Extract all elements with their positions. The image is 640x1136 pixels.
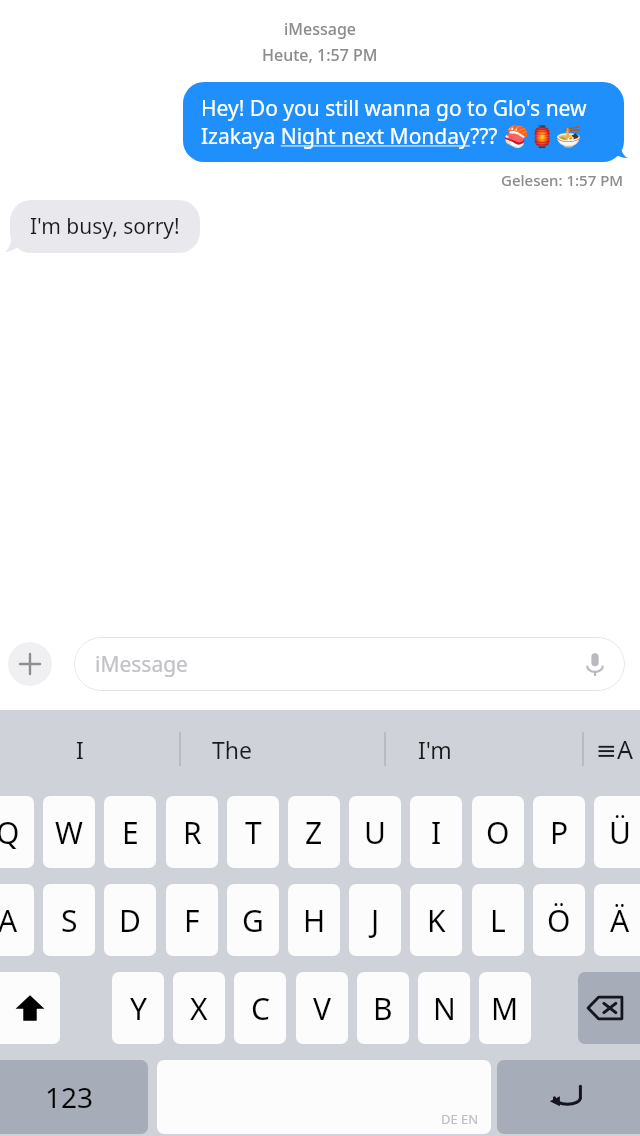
button[interactable]: The — [182, 710, 282, 788]
staticText: I'm — [418, 734, 452, 765]
button[interactable]: Shift — [0, 972, 60, 1044]
staticText: Q — [0, 812, 20, 853]
button[interactable]: U — [349, 796, 401, 868]
staticText: A — [0, 900, 18, 941]
staticText: O — [486, 812, 510, 853]
button[interactable]: V — [296, 972, 348, 1044]
staticText: J — [371, 900, 380, 941]
button[interactable]: Add attachment — [8, 642, 52, 686]
staticText: R — [183, 812, 202, 853]
button[interactable]: S — [43, 884, 95, 956]
staticText: I — [431, 812, 442, 853]
button[interactable]: O — [472, 796, 524, 868]
button[interactable]: Ö — [533, 884, 585, 956]
staticText: U — [364, 812, 386, 853]
staticText: Gelesen: 1:57 PM — [501, 170, 624, 190]
button[interactable]: X — [173, 972, 225, 1044]
button[interactable]: C — [234, 972, 286, 1044]
staticText: DE EN — [441, 1110, 479, 1128]
staticText: N — [433, 988, 456, 1029]
button[interactable]: H — [288, 884, 340, 956]
staticText: C — [251, 988, 270, 1029]
button[interactable]: Return — [497, 1060, 640, 1134]
staticText: Ä — [610, 900, 630, 941]
button[interactable]: R — [166, 796, 218, 868]
button[interactable]: K — [410, 884, 462, 956]
staticText: Heute, 1:57 PM — [262, 44, 378, 66]
button[interactable]: W — [43, 796, 95, 868]
staticText: Y — [130, 988, 147, 1029]
staticText: Hey! Do you still wanna go to Glo's new … — [201, 94, 587, 150]
button[interactable]: I'm busy, sorry! — [10, 200, 200, 253]
staticText: T — [245, 812, 262, 853]
button[interactable]: T — [227, 796, 279, 868]
button[interactable]: Ü — [594, 796, 640, 868]
button[interactable]: A — [0, 884, 34, 956]
staticText: I'm busy, sorry! — [30, 212, 180, 241]
button[interactable]: E — [104, 796, 156, 868]
button[interactable]: G — [227, 884, 279, 956]
staticText: Ü — [609, 812, 631, 853]
button[interactable]: F — [166, 884, 218, 956]
staticText: L — [490, 900, 506, 941]
button[interactable]: D — [104, 884, 156, 956]
button[interactable]: I — [410, 796, 462, 868]
staticText: W — [55, 812, 83, 853]
staticText: X — [190, 988, 208, 1029]
staticText: The — [212, 734, 252, 765]
staticText: Ö — [547, 900, 571, 941]
button[interactable]: L — [472, 884, 524, 956]
other: Record audio — [581, 650, 609, 678]
staticText: V — [313, 988, 331, 1029]
staticText: I — [76, 734, 84, 765]
button[interactable]: 123 — [0, 1060, 148, 1134]
staticText: 123 — [45, 1078, 94, 1116]
button[interactable]: Hey! Do you still wanna go to Glo's new … — [183, 82, 624, 162]
button[interactable]: iMessage — [74, 637, 625, 691]
button[interactable]: Delete — [578, 972, 640, 1044]
button[interactable]: Space — [157, 1060, 491, 1134]
button[interactable]: I'm — [385, 710, 485, 788]
button[interactable]: P — [533, 796, 585, 868]
button[interactable]: J — [349, 884, 401, 956]
staticText: H — [303, 900, 326, 941]
button[interactable]: I — [30, 710, 130, 788]
button[interactable]: M — [479, 972, 531, 1044]
staticText: iMessage — [95, 650, 188, 679]
button[interactable]: Q — [0, 796, 34, 868]
staticText: G — [242, 900, 264, 941]
staticText: P — [550, 812, 569, 853]
staticText: S — [61, 900, 78, 941]
button[interactable]: Z — [288, 796, 340, 868]
button[interactable]: Ä — [594, 884, 640, 956]
staticText: B — [373, 988, 393, 1029]
button[interactable]: Y — [112, 972, 164, 1044]
button[interactable]: N — [418, 972, 470, 1044]
button[interactable]: Text formatting — [588, 710, 640, 788]
staticText: K — [427, 900, 446, 941]
staticText: M — [491, 988, 519, 1029]
button[interactable]: B — [357, 972, 409, 1044]
staticText: Z — [305, 812, 323, 853]
staticText: E — [122, 812, 139, 853]
staticText: D — [119, 900, 141, 941]
staticText: F — [184, 900, 200, 941]
staticText: iMessage — [284, 18, 357, 40]
staticText: ≡A — [596, 732, 633, 766]
